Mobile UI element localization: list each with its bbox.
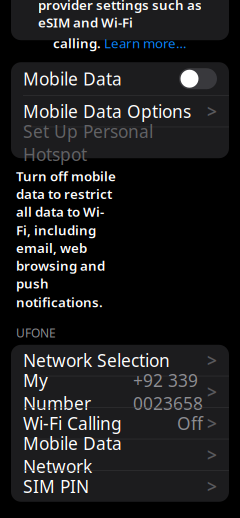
staticText: Off [177,412,203,435]
staticText: Mobile Data Network [23,432,122,478]
staticText: > [207,380,217,403]
button[interactable]: Network Selection [11,345,229,376]
button[interactable]: Mobile Data Options [11,96,229,127]
staticText: notifications. [16,293,103,311]
staticText: My Number [23,369,91,415]
staticText: provider settings such as eSIM and Wi-Fi [38,0,202,31]
button[interactable]: Mobile Data [179,68,217,89]
button[interactable]: Learn more… [104,34,187,52]
staticText: > [207,412,217,435]
staticText: Mobile Data Options [23,100,191,123]
staticText: UFONE [16,325,56,341]
staticText: Learn more… [104,34,187,52]
button[interactable]: Mobile Data Network [11,439,229,470]
staticText: Network Selection [23,349,170,372]
staticText: > [207,100,217,123]
staticText: calling. [53,34,101,52]
staticText: Set Up Personal Hotspot [23,120,153,166]
staticText: Wi-Fi Calling [23,412,122,435]
staticText: Fi, including email, web browsing and pu… [16,221,105,292]
button[interactable]: SIM PIN [11,471,229,502]
staticText: Turn off mobile data to restrict all dat… [16,167,116,220]
staticText: +92 339 0023658 [133,369,203,415]
staticText: > [207,475,217,498]
staticText: > [207,443,217,466]
staticText: Mobile Data [23,67,122,90]
button[interactable]: Wi-Fi Calling [11,408,229,439]
staticText: > [207,349,217,372]
button[interactable]: My Number [11,376,229,407]
staticText: SIM PIN [23,475,89,498]
